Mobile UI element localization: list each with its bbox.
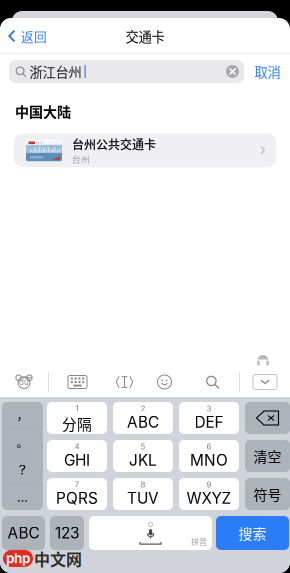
staticText: 中文网 [34, 547, 82, 570]
staticText: PQRS [56, 489, 98, 508]
button[interactable]: Hide keyboard [240, 367, 290, 397]
button[interactable]: 2 [113, 402, 173, 434]
button[interactable]: Punctuation [2, 402, 43, 510]
staticText: 3 [206, 404, 211, 413]
staticText: 台州公共交通卡 [72, 135, 156, 153]
button[interactable]: 6 [179, 440, 239, 472]
staticText: 7 [74, 480, 79, 489]
button[interactable]: 5 [113, 440, 173, 472]
button[interactable]: 清空 [245, 440, 290, 472]
staticText: 清空 [253, 446, 281, 466]
staticText: … [17, 490, 28, 505]
button[interactable]: 8 [113, 478, 173, 510]
staticText: 6 [206, 442, 211, 451]
button[interactable]: 符号 [245, 478, 290, 510]
staticText: 返回 [21, 27, 47, 45]
button[interactable]: 台州公共交通卡 [14, 133, 276, 167]
button[interactable]: 搜索 [216, 516, 289, 550]
staticText: 台州 [72, 153, 90, 165]
staticText: 符号 [253, 484, 281, 504]
staticText: 。 [16, 434, 28, 451]
staticText: 9 [206, 480, 211, 489]
button[interactable]: ABC [2, 516, 45, 550]
staticText: du [19, 377, 29, 387]
staticText: ABC [127, 413, 159, 432]
button[interactable]: Move cursor [106, 367, 143, 397]
staticText: 4 [74, 442, 79, 451]
staticText: 123 [55, 524, 79, 542]
button[interactable]: Delete [245, 402, 290, 434]
staticText: JKL [129, 451, 157, 470]
staticText: 浙江台州 [29, 62, 81, 81]
button[interactable]: 3 [179, 402, 239, 434]
staticText: 2 [140, 404, 145, 413]
staticText: MNO [190, 451, 228, 470]
button[interactable]: 返回 [0, 18, 57, 54]
staticText: ABC [7, 524, 39, 542]
staticText: 分隔 [62, 413, 92, 434]
staticText: ， [16, 406, 28, 423]
staticText: 1 [75, 403, 78, 413]
staticText: 交通卡 [125, 26, 164, 46]
button[interactable]: 9 [179, 478, 239, 510]
staticText: ? [19, 462, 26, 478]
staticText: 8 [140, 480, 145, 489]
staticText: GHI [64, 451, 90, 470]
button[interactable]: Space [89, 516, 212, 550]
button[interactable]: 4 [47, 440, 107, 472]
staticText: WXYZ [186, 489, 231, 508]
staticText: 取消 [254, 62, 280, 81]
button[interactable]: Baidu IME [0, 367, 48, 397]
button[interactable]: 7 [47, 478, 107, 510]
staticText: DEF [194, 413, 223, 432]
staticText: php [6, 550, 30, 566]
staticText: 5 [140, 442, 145, 451]
staticText: 中国大陆 [15, 101, 71, 121]
staticText: 拼音 [191, 535, 207, 547]
button[interactable]: 123 [50, 516, 84, 550]
button[interactable]: Keyboard [49, 367, 106, 397]
staticText: 搜索 [238, 523, 266, 543]
button[interactable]: Emoji [143, 367, 186, 397]
button[interactable]: Search [186, 367, 239, 397]
staticText: TUV [127, 489, 159, 508]
button[interactable]: 1 [47, 402, 107, 434]
button[interactable]: 取消 [251, 60, 284, 83]
